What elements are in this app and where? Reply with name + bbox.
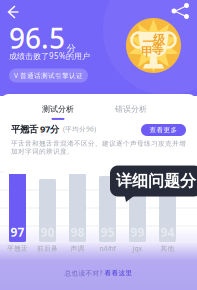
- staticText: 甲: [141, 45, 153, 59]
- staticText: 成绩击败了95%的用户: [9, 51, 90, 61]
- staticText: 平舌音和翘舌音混淆不区分。建议逐个声母练习攻克并增加对字词的辨识度。: [11, 139, 186, 156]
- button[interactable]: 查看更多: [141, 124, 186, 136]
- button[interactable]: Back: [3, 1, 29, 23]
- staticText: 总也读不对?: [64, 269, 102, 277]
- staticText: 级: [153, 32, 165, 47]
- staticText: 一: [142, 35, 154, 49]
- staticText: 90: [40, 224, 54, 240]
- staticText: 98: [70, 224, 84, 240]
- staticText: 其他: [160, 244, 174, 253]
- staticText: 看看这里: [104, 269, 132, 277]
- staticText: 99: [130, 224, 144, 240]
- staticText: 声调: [70, 244, 84, 253]
- staticText: V 普通话测试引擎认证: [14, 71, 83, 80]
- staticText: 分: [66, 43, 75, 54]
- staticText: 错误分析: [115, 104, 147, 114]
- staticText: 平翘舌 97分: [11, 123, 59, 135]
- staticText: 97: [10, 224, 24, 240]
- staticText: n/l/hf: [99, 244, 115, 253]
- staticText: 详细问题分: [116, 171, 196, 191]
- staticText: jqx: [132, 244, 142, 253]
- button[interactable]: 测试分析: [23, 100, 93, 124]
- staticText: 95: [100, 224, 114, 240]
- button[interactable]: Share: [169, 0, 193, 22]
- button[interactable]: 总也读不对?: [38, 265, 158, 281]
- staticText: 平翘舌: [7, 244, 28, 253]
- staticText: 96.5: [9, 19, 65, 57]
- staticText: 等: [151, 42, 163, 57]
- staticText: 前后鼻: [37, 244, 58, 253]
- staticText: 94: [160, 224, 174, 240]
- staticText: (平均分96): [63, 125, 96, 133]
- staticText: 查看更多: [149, 126, 177, 134]
- button[interactable]: 错误分析: [96, 100, 166, 124]
- staticText: 测试分析: [42, 104, 74, 114]
